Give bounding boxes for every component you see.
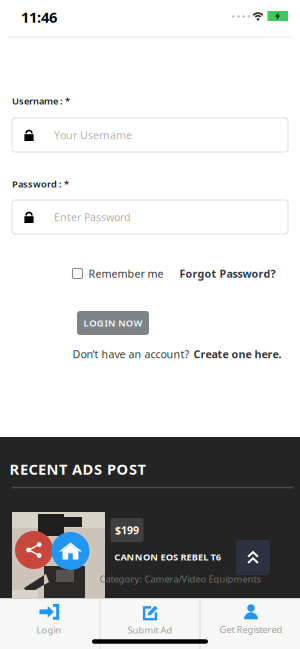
button[interactable]: Share bbox=[15, 531, 53, 569]
staticText: Forgot Password? bbox=[179, 266, 275, 281]
staticText: Enter Password bbox=[54, 210, 131, 224]
staticText: $199 bbox=[115, 523, 139, 537]
staticText: Submit Ad bbox=[127, 624, 172, 636]
staticText: Category: Camera/Video Equipments bbox=[99, 573, 260, 585]
staticText: CANNON EOS REBEL T6 bbox=[114, 551, 221, 563]
button[interactable]: CANNON EOS REBEL T6 bbox=[114, 551, 221, 563]
button[interactable]: Get Registered bbox=[219, 604, 282, 636]
staticText: Login bbox=[36, 624, 61, 636]
staticText: Get Registered bbox=[219, 623, 282, 636]
button[interactable]: Remember me bbox=[72, 266, 163, 281]
button[interactable]: Create one here. bbox=[193, 347, 281, 361]
button[interactable]: Scroll to top bbox=[236, 540, 270, 575]
staticText: Remember me bbox=[88, 266, 163, 281]
staticText: Your Username bbox=[54, 128, 132, 142]
button[interactable]: Home bbox=[51, 532, 89, 570]
staticText: Password : * bbox=[12, 178, 69, 190]
button[interactable]: LOGIN NOW bbox=[77, 311, 149, 335]
staticText: 11:46 bbox=[21, 7, 57, 27]
staticText: Username : * bbox=[12, 95, 70, 107]
staticText: RECENT ADS POST bbox=[9, 459, 145, 479]
staticText: LOGIN NOW bbox=[84, 317, 142, 329]
staticText: Don’t have an account? bbox=[72, 347, 189, 361]
button[interactable]: Forgot Password? bbox=[179, 266, 275, 281]
button[interactable]: Submit Ad bbox=[127, 604, 172, 636]
button[interactable]: Login bbox=[36, 604, 61, 636]
staticText: Create one here. bbox=[193, 347, 281, 361]
